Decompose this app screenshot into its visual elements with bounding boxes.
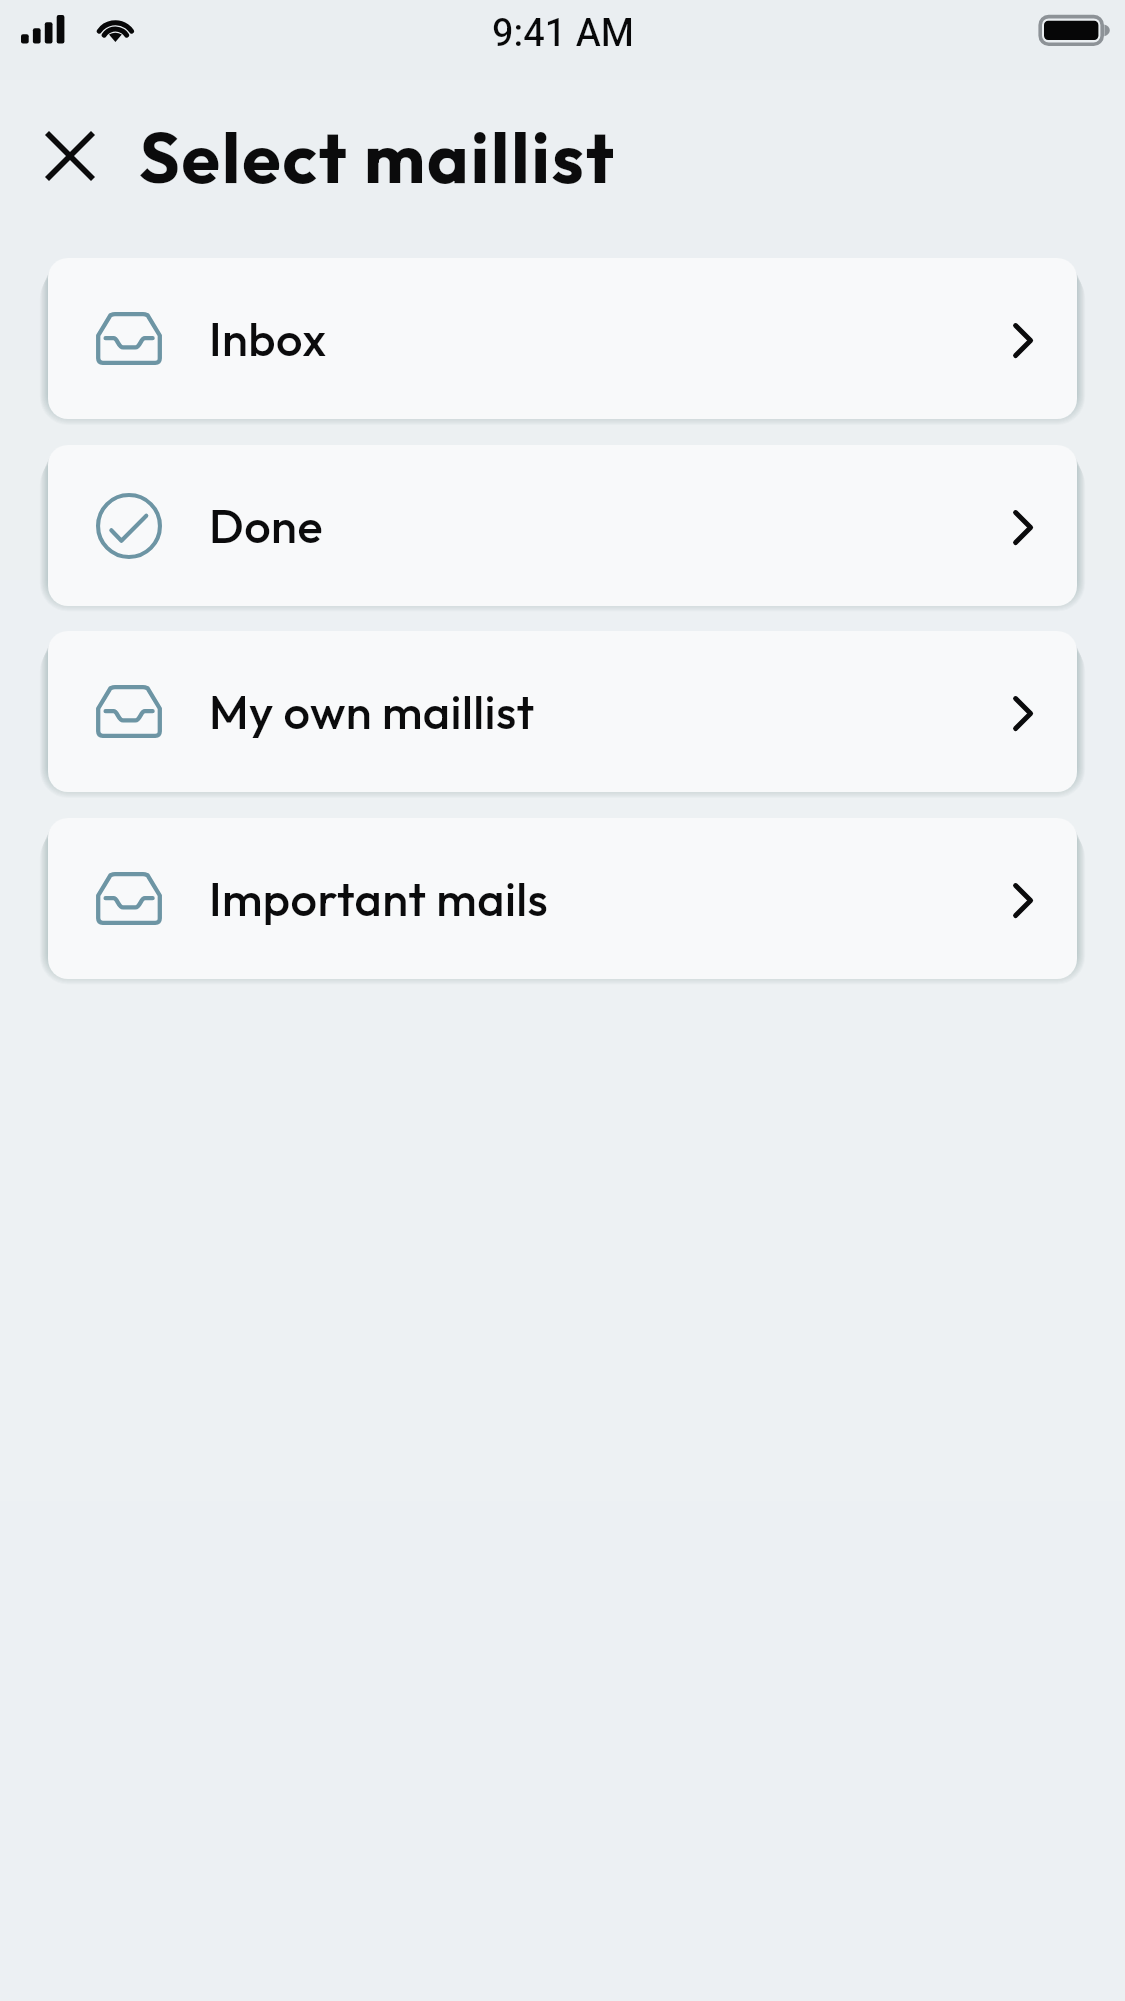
staticText: 9:41 AM	[492, 11, 634, 56]
button[interactable]: Important mails	[48, 818, 1077, 979]
staticText: Inbox	[209, 309, 327, 368]
button[interactable]: My own maillist	[48, 631, 1077, 792]
button[interactable]: Done	[48, 445, 1077, 606]
button[interactable]: Inbox	[48, 258, 1077, 419]
button[interactable]: Close	[28, 114, 112, 198]
staticText: Important mails	[209, 869, 549, 928]
staticText: Select maillist	[139, 113, 616, 201]
staticText: My own maillist	[209, 682, 535, 741]
staticText: Done	[209, 496, 323, 555]
